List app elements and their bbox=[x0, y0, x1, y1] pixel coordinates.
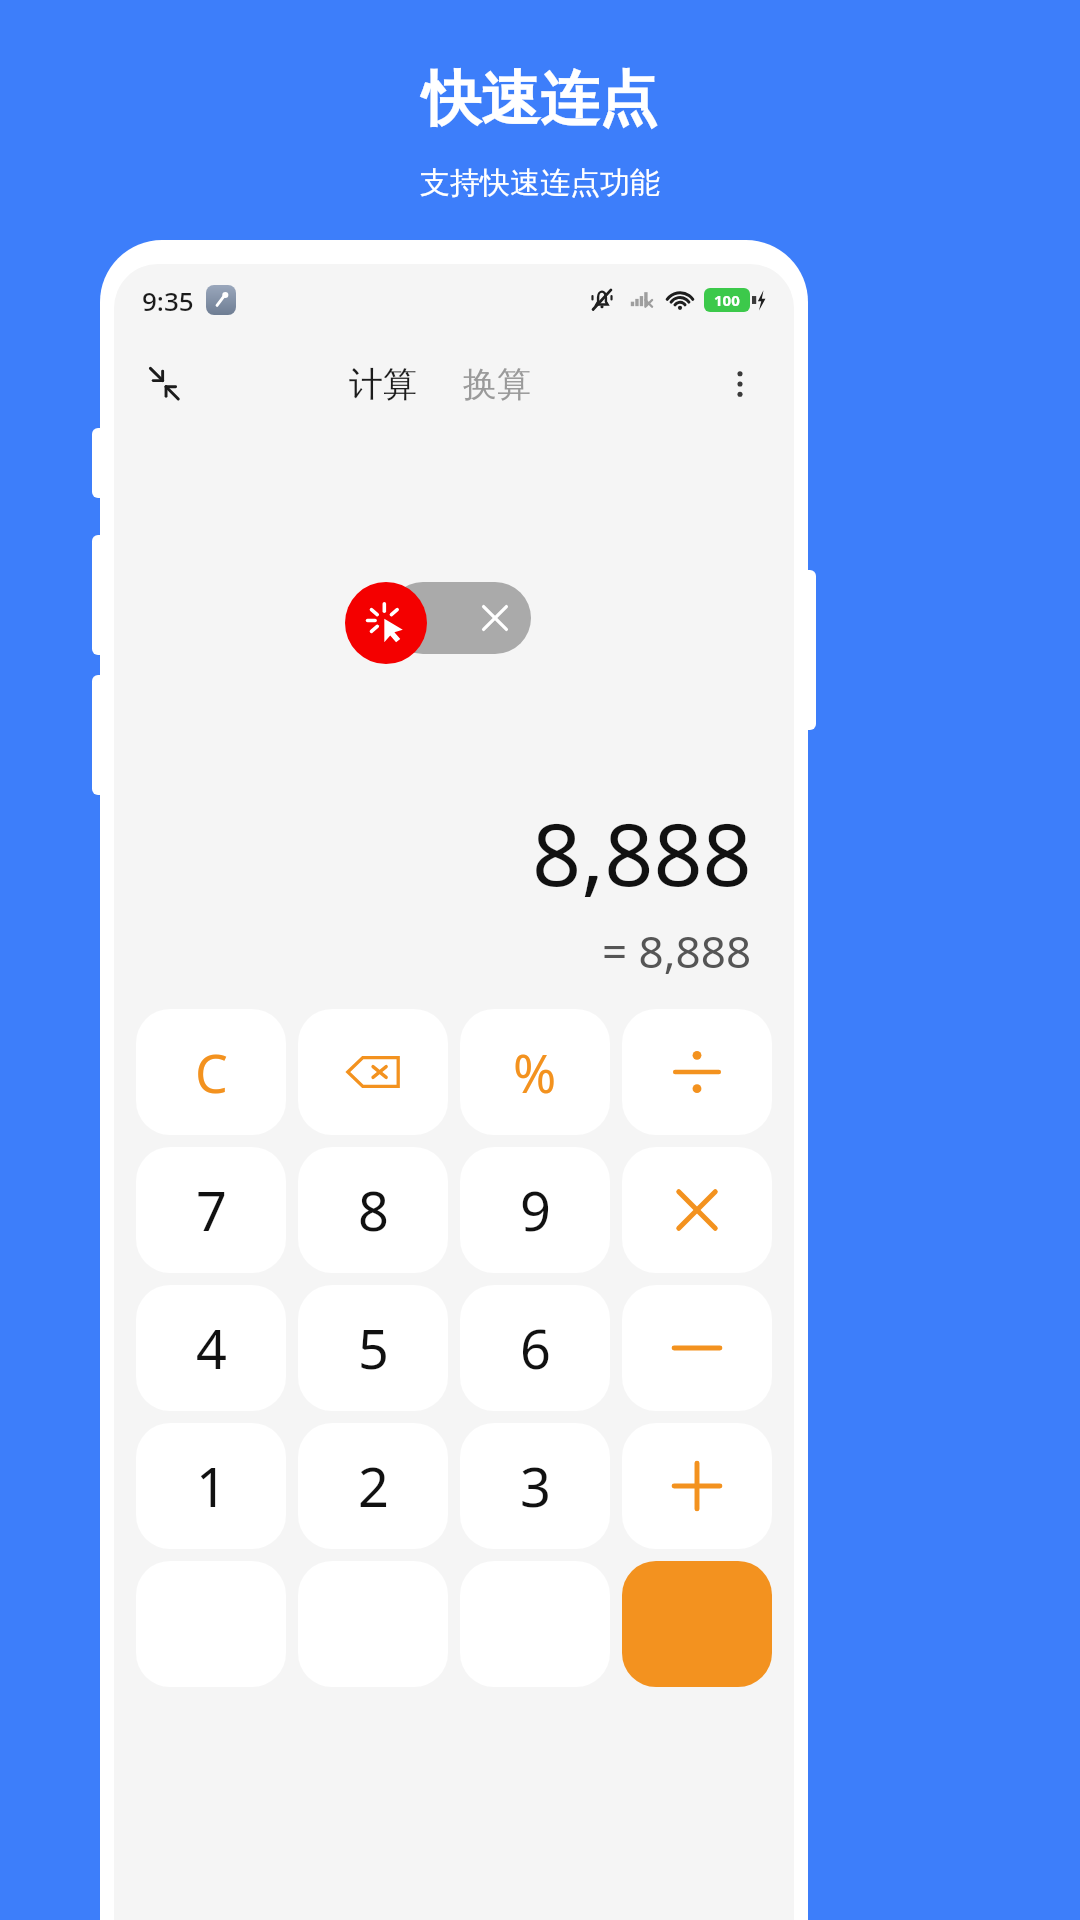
staticText: 4 bbox=[196, 1311, 227, 1385]
button[interactable]: 7 bbox=[136, 1147, 286, 1273]
button[interactable]: 5 bbox=[298, 1285, 448, 1411]
staticText: C bbox=[195, 1037, 228, 1108]
staticText: 9:35 bbox=[142, 283, 194, 318]
button[interactable]: 计算 bbox=[335, 355, 431, 414]
staticText: 8,888 bbox=[532, 794, 752, 911]
staticText: 9 bbox=[520, 1173, 551, 1247]
button[interactable]: 9 bbox=[460, 1147, 610, 1273]
button[interactable]: 8 bbox=[298, 1147, 448, 1273]
button[interactable]: More options bbox=[712, 356, 768, 412]
button[interactable]: Backspace bbox=[298, 1009, 448, 1135]
staticText: 换算 bbox=[463, 363, 531, 406]
staticText: 3 bbox=[520, 1449, 551, 1523]
button[interactable]: 3 bbox=[460, 1423, 610, 1549]
button[interactable]: % bbox=[460, 1009, 610, 1135]
button[interactable]: 1 bbox=[136, 1423, 286, 1549]
button[interactable] bbox=[622, 1561, 772, 1687]
button[interactable]: Close clicker bbox=[469, 592, 521, 644]
button[interactable]: Auto clicker bbox=[345, 582, 427, 664]
staticText: % bbox=[513, 1037, 557, 1108]
staticText: 7 bbox=[196, 1173, 227, 1247]
staticText: 支持快速连点功能 bbox=[420, 164, 660, 202]
button[interactable]: 换算 bbox=[449, 355, 545, 414]
button[interactable]: Minus bbox=[622, 1285, 772, 1411]
button[interactable]: Multiply bbox=[622, 1147, 772, 1273]
button[interactable]: 6 bbox=[460, 1285, 610, 1411]
staticText: 快速连点 bbox=[422, 62, 658, 136]
staticText: 1 bbox=[196, 1449, 227, 1523]
staticText: 8 bbox=[358, 1173, 389, 1247]
button[interactable]: Divide bbox=[622, 1009, 772, 1135]
button[interactable]: 2 bbox=[298, 1423, 448, 1549]
button[interactable]: 4 bbox=[136, 1285, 286, 1411]
staticText: 100 bbox=[714, 290, 740, 310]
staticText: 6 bbox=[520, 1311, 551, 1385]
staticText: 2 bbox=[358, 1449, 389, 1523]
button[interactable]: Collapse bbox=[136, 356, 192, 412]
button[interactable]: C bbox=[136, 1009, 286, 1135]
staticText: = 8,888 bbox=[602, 921, 752, 981]
staticText: 5 bbox=[358, 1311, 389, 1385]
staticText: 计算 bbox=[349, 363, 417, 406]
button[interactable]: Plus bbox=[622, 1423, 772, 1549]
